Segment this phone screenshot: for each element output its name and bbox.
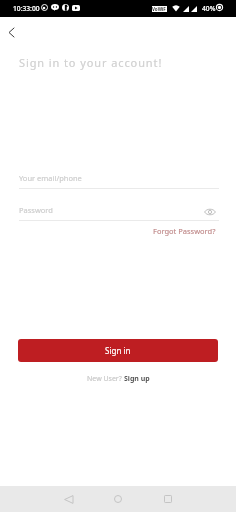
staticText: 40%	[202, 4, 216, 13]
button[interactable]: Back	[1, 22, 21, 42]
staticText: Sign in to your account!	[19, 55, 163, 70]
button[interactable]: Show password	[202, 204, 218, 220]
button[interactable]: Sign in	[18, 339, 218, 362]
button[interactable]: Sign up	[124, 374, 150, 384]
staticText: Your email/phone	[19, 173, 82, 183]
staticText: Sign in	[105, 345, 131, 356]
staticText: 10:33:00	[13, 4, 40, 13]
staticText: New User?	[87, 374, 124, 384]
button[interactable]: Recent apps	[153, 486, 182, 512]
button[interactable]: Forgot Password?	[153, 226, 216, 236]
button[interactable]: Back	[54, 486, 83, 512]
staticText: Password	[19, 205, 53, 215]
button[interactable]: Home	[103, 486, 132, 512]
staticText: VoWiFi	[152, 6, 167, 12]
